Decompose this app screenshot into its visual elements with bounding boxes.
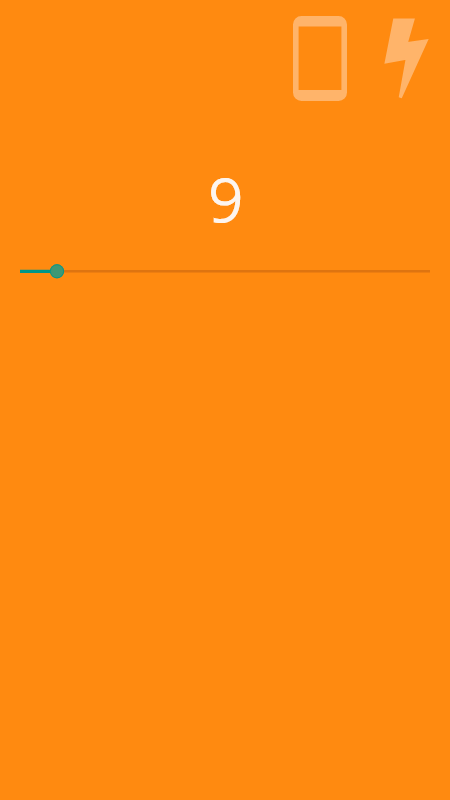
button[interactable]: Screen timeout [293, 16, 347, 101]
button[interactable]: Value slider [0, 251, 450, 291]
staticText: 9 [1, 157, 450, 240]
button[interactable]: Flash [384, 18, 428, 99]
staticText: 9 [1, 157, 450, 240]
